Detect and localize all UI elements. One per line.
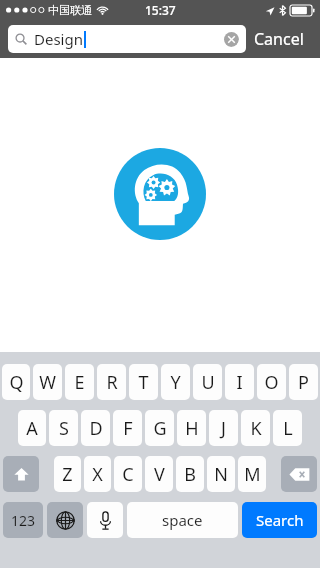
staticText: space xyxy=(162,510,203,530)
staticText: C xyxy=(122,462,134,487)
button[interactable]: space xyxy=(127,502,238,538)
button[interactable]: S xyxy=(49,410,78,446)
button[interactable]: L xyxy=(273,410,302,446)
staticText: U xyxy=(201,370,215,395)
button[interactable]: R xyxy=(97,364,126,400)
button[interactable]: Clear text xyxy=(223,31,239,47)
button[interactable]: 123 xyxy=(3,502,43,538)
button[interactable]: Design xyxy=(8,25,246,53)
staticText: 中国联通 xyxy=(48,3,92,17)
staticText: 123 xyxy=(11,511,36,530)
staticText: Q xyxy=(9,370,24,395)
button[interactable]: C xyxy=(114,456,142,492)
staticText: W xyxy=(39,370,56,395)
button[interactable]: P xyxy=(289,364,318,400)
button[interactable]: I xyxy=(225,364,254,400)
button[interactable]: D xyxy=(81,410,110,446)
staticText: 15:37 xyxy=(145,2,176,18)
button[interactable]: U xyxy=(193,364,222,400)
button[interactable]: H xyxy=(177,410,206,446)
button[interactable]: A xyxy=(18,410,46,446)
button[interactable]: Voice input xyxy=(87,502,123,538)
staticText: B xyxy=(184,462,196,487)
staticText: K xyxy=(250,416,262,441)
staticText: J xyxy=(221,416,226,441)
button[interactable]: Shift xyxy=(3,456,39,492)
staticText: L xyxy=(283,416,293,441)
button[interactable]: Change keyboard language xyxy=(47,502,83,538)
button[interactable]: O xyxy=(257,364,286,400)
button[interactable]: W xyxy=(33,364,62,400)
staticText: Z xyxy=(62,462,73,487)
button[interactable]: X xyxy=(84,456,111,492)
button[interactable]: T xyxy=(129,364,158,400)
button[interactable]: K xyxy=(241,410,270,446)
staticText: X xyxy=(92,462,103,487)
staticText: F xyxy=(123,416,133,441)
button[interactable]: G xyxy=(145,410,174,446)
staticText: Cancel xyxy=(254,28,304,50)
button[interactable]: E xyxy=(65,364,94,400)
button[interactable]: B xyxy=(176,456,204,492)
button[interactable]: Y xyxy=(161,364,190,400)
staticText: R xyxy=(106,370,118,395)
staticText: Y xyxy=(170,370,181,395)
staticText: G xyxy=(153,416,167,441)
button[interactable]: F xyxy=(113,410,142,446)
button[interactable]: N xyxy=(207,456,235,492)
staticText: Design xyxy=(34,29,83,49)
button[interactable]: Q xyxy=(2,364,30,400)
staticText: M xyxy=(244,462,261,487)
staticText: P xyxy=(298,370,309,395)
button[interactable]: V xyxy=(145,456,173,492)
staticText: T xyxy=(138,370,149,395)
staticText: H xyxy=(185,416,199,441)
button[interactable]: Cancel xyxy=(246,22,312,56)
button[interactable]: Z xyxy=(54,456,81,492)
staticText: N xyxy=(214,462,228,487)
staticText: O xyxy=(264,370,279,395)
button[interactable]: M xyxy=(238,456,266,492)
staticText: A xyxy=(26,416,38,441)
staticText: Search xyxy=(256,510,304,530)
staticText: E xyxy=(74,370,85,395)
button[interactable]: Search xyxy=(242,502,317,538)
staticText: D xyxy=(89,416,103,441)
staticText: V xyxy=(154,462,165,487)
button[interactable]: Backspace xyxy=(281,456,317,492)
staticText: I xyxy=(236,370,243,395)
staticText: S xyxy=(59,416,69,441)
button[interactable]: J xyxy=(209,410,238,446)
